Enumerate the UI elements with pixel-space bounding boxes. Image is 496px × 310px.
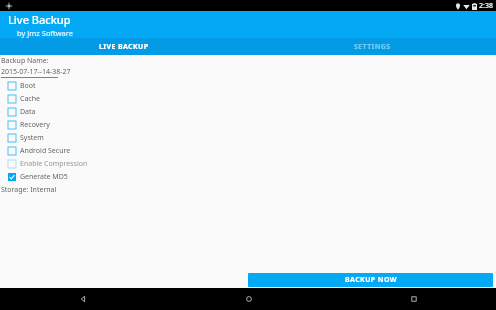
staticText: System xyxy=(20,133,44,143)
staticText: Data xyxy=(20,107,36,117)
button[interactable]: Cache xyxy=(0,92,496,105)
button[interactable]: LIVE BACKUP xyxy=(0,38,248,55)
staticText: BACKUP NOW xyxy=(345,275,397,285)
button[interactable]: System xyxy=(0,131,496,144)
staticText: 2:38 xyxy=(479,1,493,11)
button[interactable]: Back xyxy=(0,288,166,310)
staticText: Cache xyxy=(20,94,40,104)
staticText: Android Secure xyxy=(20,146,71,156)
button[interactable]: Boot xyxy=(0,79,496,92)
button[interactable]: Recent apps xyxy=(331,288,496,310)
button[interactable]: Recovery xyxy=(0,118,496,131)
staticText: Backup Name: xyxy=(1,56,49,66)
button[interactable]: SETTINGS xyxy=(248,38,496,55)
staticText: Enable Compression xyxy=(20,159,88,169)
button[interactable]: BACKUP NOW xyxy=(248,273,493,287)
button[interactable]: Generate MD5 xyxy=(0,170,496,183)
button[interactable]: Home xyxy=(166,288,331,310)
staticText: SETTINGS xyxy=(354,42,391,52)
button[interactable]: Enable Compression xyxy=(0,157,496,170)
staticText: Recovery xyxy=(20,120,50,130)
staticText: Storage: Internal xyxy=(1,185,57,195)
staticText: by Jmz Software xyxy=(17,28,73,38)
button[interactable]: Android Secure xyxy=(0,144,496,157)
staticText: 2015-07-17--14-38-27 xyxy=(1,67,71,77)
staticText: Live Backup xyxy=(8,12,71,27)
staticText: Generate MD5 xyxy=(20,172,68,182)
staticText: Boot xyxy=(20,81,36,91)
button[interactable]: Data xyxy=(0,105,496,118)
staticText: LIVE BACKUP xyxy=(99,42,149,52)
